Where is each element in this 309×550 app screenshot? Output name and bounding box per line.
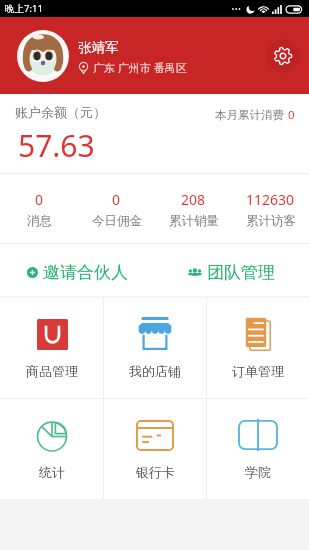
button[interactable]: 商品管理 xyxy=(0,298,103,398)
button[interactable]: 银行卡 xyxy=(104,399,206,499)
staticText: 订单管理 xyxy=(232,363,284,379)
staticText: 累计访客 xyxy=(246,213,296,229)
staticText: 本月累计消费 xyxy=(215,108,284,122)
staticText: 208 xyxy=(181,190,206,209)
staticText: 统计 xyxy=(39,464,65,480)
button[interactable]: 团队管理 xyxy=(154,249,309,296)
staticText: 今日佣金 xyxy=(92,213,142,229)
button[interactable]: 我的店铺 xyxy=(104,298,206,398)
staticText: 消息 xyxy=(27,213,52,229)
staticText: 我的店铺 xyxy=(129,363,181,379)
staticText: 0 xyxy=(112,190,121,209)
staticText: 银行卡 xyxy=(136,464,175,480)
button[interactable]: 208 xyxy=(155,174,232,243)
staticText: 0 xyxy=(288,107,295,123)
staticText: 晚上7:11 xyxy=(5,2,43,15)
staticText: 学院 xyxy=(245,464,271,480)
staticText: 团队管理 xyxy=(207,262,275,283)
button[interactable]: 订单管理 xyxy=(207,298,309,398)
button[interactable]: 统计 xyxy=(0,399,103,499)
staticText: 张靖军 xyxy=(78,39,119,56)
button[interactable]: 0 xyxy=(0,174,78,243)
button[interactable]: 0 xyxy=(78,174,155,243)
staticText: 57.63 xyxy=(18,125,95,166)
staticText: 0 xyxy=(35,190,44,209)
staticText: 账户余额（元） xyxy=(15,104,106,120)
button[interactable]: Settings xyxy=(266,39,300,73)
button[interactable]: 112630 xyxy=(232,174,309,243)
button[interactable]: 学院 xyxy=(207,399,309,499)
button[interactable]: Profile avatar xyxy=(17,30,69,82)
staticText: 累计销量 xyxy=(169,213,219,229)
staticText: 广东 广州市 番禺区 xyxy=(93,60,187,75)
button[interactable]: 邀请合伙人 xyxy=(0,249,154,296)
staticText: 商品管理 xyxy=(26,363,78,379)
staticText: 112630 xyxy=(246,190,295,209)
staticText: 邀请合伙人 xyxy=(43,262,128,283)
